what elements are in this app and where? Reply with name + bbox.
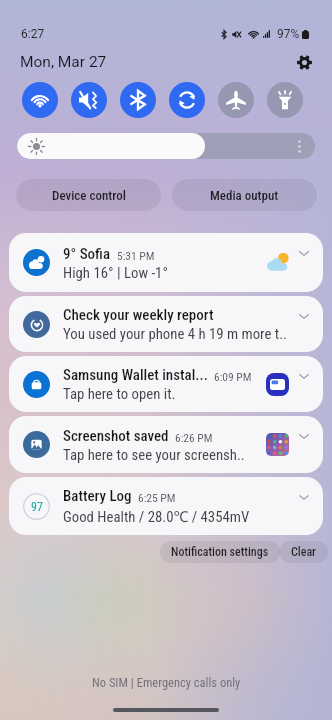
staticText: 5:31 PM bbox=[117, 249, 155, 262]
staticText: Samsung Wallet instal... bbox=[63, 366, 208, 384]
staticText: Notification settings bbox=[171, 545, 269, 559]
button[interactable]: Settings bbox=[294, 52, 314, 72]
button[interactable]: Media output bbox=[172, 179, 317, 211]
staticText: You used your phone 4 h 19 m more t.. bbox=[63, 325, 287, 342]
button[interactable]: Notification settings bbox=[160, 541, 280, 563]
staticText: 6:26 PM bbox=[175, 431, 213, 444]
staticText: Good Health / 28.0℃ / 4354mV bbox=[63, 506, 250, 526]
button[interactable]: Clear bbox=[279, 541, 328, 563]
button[interactable]: Device control bbox=[16, 179, 161, 211]
staticText: 6:09 PM bbox=[214, 370, 252, 383]
button[interactable]: 97 bbox=[9, 477, 323, 535]
staticText: No SIM | Emergency calls only bbox=[92, 675, 241, 690]
staticText: Media output bbox=[210, 188, 279, 203]
staticText: Device control bbox=[52, 188, 126, 203]
button[interactable]: Samsung Wallet instal... bbox=[9, 356, 323, 412]
staticText: Clear bbox=[291, 545, 316, 559]
staticText: Mon, Mar 27 bbox=[20, 53, 107, 71]
staticText: 97% bbox=[277, 27, 300, 41]
button[interactable]: Sound off bbox=[71, 82, 107, 118]
staticText: Check your weekly report bbox=[63, 306, 214, 324]
button[interactable]: Brightness bbox=[17, 133, 315, 159]
button[interactable]: Airplane mode bbox=[218, 82, 254, 118]
staticText: Battery Log bbox=[63, 487, 132, 505]
button[interactable]: Flashlight bbox=[267, 82, 303, 118]
button[interactable]: Wi-Fi bbox=[22, 82, 58, 118]
staticText: 97 bbox=[31, 500, 43, 514]
button[interactable]: Check your weekly report bbox=[9, 296, 323, 352]
button[interactable]: Auto rotate bbox=[169, 82, 205, 118]
button[interactable]: 9° Sofia bbox=[9, 233, 323, 292]
staticText: Tap here to see your screensh.. bbox=[63, 446, 245, 463]
staticText: Screenshot saved bbox=[63, 427, 169, 445]
staticText: 6:25 PM bbox=[138, 491, 176, 504]
staticText: High 16° | Low -1° bbox=[63, 264, 168, 281]
staticText: 6:27 bbox=[21, 27, 45, 41]
staticText: Tap here to open it. bbox=[63, 385, 176, 402]
staticText: 9° Sofia bbox=[63, 245, 111, 263]
button[interactable]: Screenshot saved bbox=[9, 416, 323, 473]
button[interactable]: Bluetooth bbox=[120, 82, 156, 118]
